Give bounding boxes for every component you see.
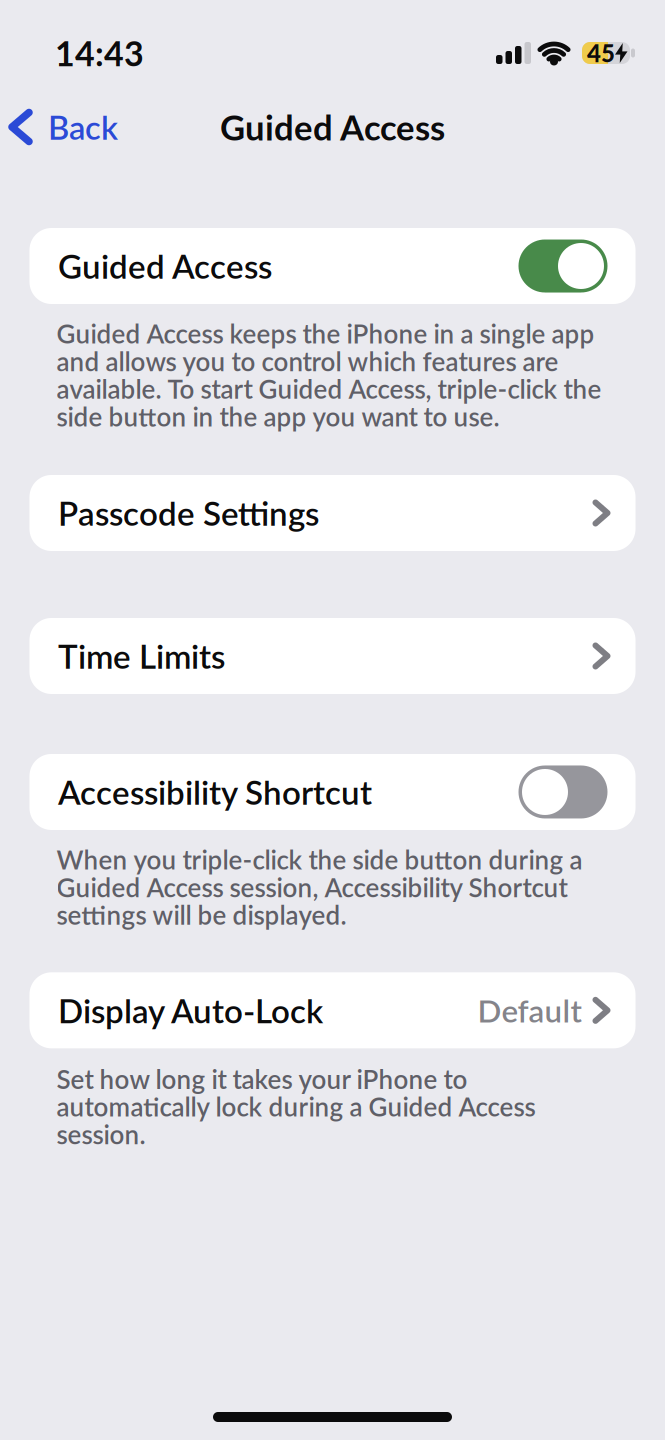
staticText: Back xyxy=(48,107,118,147)
button[interactable]: Passcode Settings xyxy=(29,475,635,551)
button[interactable]: Back xyxy=(12,107,118,147)
staticText: 45 xyxy=(587,39,615,67)
staticText: Accessibility Shortcut xyxy=(58,772,372,812)
staticText: Passcode Settings xyxy=(58,493,319,533)
staticText: When you triple-click the side button du… xyxy=(56,844,582,930)
button[interactable]: Accessibility Shortcut xyxy=(518,765,607,818)
staticText: Guided Access xyxy=(58,246,272,286)
staticText: Default xyxy=(477,991,581,1029)
staticText: 14:43 xyxy=(55,33,144,73)
staticText: Guided Access keeps the iPhone in a sing… xyxy=(56,318,601,432)
staticText: Guided Access xyxy=(220,106,445,148)
button[interactable]: Time Limits xyxy=(29,618,635,694)
button[interactable]: Display Auto-Lock xyxy=(29,972,635,1048)
staticText: Set how long it takes your iPhone to aut… xyxy=(56,1063,535,1150)
staticText: Display Auto-Lock xyxy=(58,990,323,1030)
button[interactable]: Guided Access xyxy=(518,239,607,292)
staticText: Time Limits xyxy=(58,636,225,676)
